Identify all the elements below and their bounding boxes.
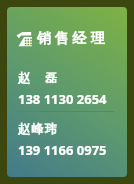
- button[interactable]: 赵 磊: [7, 69, 127, 108]
- other: Phone: [16, 31, 32, 47]
- staticText: 赵 磊: [18, 69, 59, 85]
- button[interactable]: Phone: [7, 7, 127, 177]
- staticText: 销售经理: [37, 30, 109, 48]
- button[interactable]: 赵峰玮: [7, 121, 127, 159]
- staticText: 赵峰玮: [18, 121, 59, 136]
- staticText: 139 1166 0975: [18, 141, 107, 159]
- staticText: 138 1130 2654: [18, 90, 107, 108]
